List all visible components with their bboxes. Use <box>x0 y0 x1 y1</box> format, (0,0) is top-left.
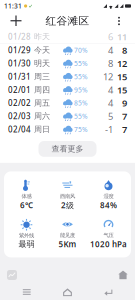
staticText: 55% <box>74 112 88 121</box>
staticText: 周五 <box>34 98 50 108</box>
button[interactable]: Recents <box>13 285 41 299</box>
button[interactable]: 02/02 <box>0 96 135 110</box>
button[interactable]: Statistics <box>1 267 23 283</box>
staticText: 昨天 <box>34 32 50 41</box>
staticText: 5Km <box>58 239 76 249</box>
staticText: 95% <box>74 85 88 94</box>
staticText: 周日 <box>34 124 50 134</box>
staticText: 4 <box>108 84 113 96</box>
staticText: 体感 <box>21 193 31 199</box>
staticText: 01/28 <box>8 31 31 42</box>
staticText: 85% <box>74 99 88 107</box>
staticText: 红谷滩区 <box>45 14 89 27</box>
button[interactable]: 02/04 <box>0 123 135 136</box>
staticText: 75% <box>74 125 88 134</box>
staticText: 15 <box>117 70 127 83</box>
staticText: 84% <box>100 200 117 210</box>
staticText: 7 <box>122 123 127 136</box>
staticText: 9 <box>122 97 127 109</box>
staticText: 02/02 <box>8 98 31 108</box>
staticText: 2级 <box>61 200 74 210</box>
staticText: 01/31 <box>8 71 31 82</box>
staticText: 15 <box>117 84 127 96</box>
button[interactable]: Back <box>94 285 122 299</box>
staticText: 能见度 <box>60 232 75 238</box>
staticText: 4 <box>108 44 113 56</box>
button[interactable]: Home shortcut <box>112 267 134 283</box>
staticText: 今天 <box>34 45 50 55</box>
staticText: 7 <box>122 110 127 122</box>
button[interactable]: Home <box>53 285 81 299</box>
staticText: 01/30 <box>8 58 31 69</box>
staticText: 周三 <box>34 72 50 81</box>
staticText: -1 <box>105 123 113 136</box>
staticText: 11 <box>117 30 127 43</box>
staticText: 70% <box>74 46 88 55</box>
button[interactable]: 01/28 <box>0 30 135 43</box>
button[interactable]: 查看更多 <box>38 141 96 157</box>
staticText: 02/01 <box>8 84 31 95</box>
staticText: 周四 <box>34 85 50 95</box>
staticText: 12 <box>103 70 113 83</box>
button[interactable]: 01/31 <box>0 70 135 83</box>
button[interactable]: 01/29 <box>0 44 135 57</box>
staticText: 02/03 <box>8 111 31 121</box>
staticText: 周六 <box>34 111 50 121</box>
staticText: 气压 <box>103 232 113 238</box>
staticText: 01/29 <box>8 45 31 55</box>
staticText: 6 <box>108 30 113 43</box>
staticText: 02/04 <box>8 124 31 135</box>
staticText: 明天 <box>34 58 50 68</box>
staticText: 紫外线 <box>19 232 34 239</box>
staticText: 55% <box>74 72 88 81</box>
button[interactable]: 01/30 <box>0 57 135 70</box>
staticText: 5 <box>108 110 113 122</box>
button[interactable]: 02/01 <box>0 83 135 96</box>
button[interactable]: Add city <box>4 12 28 30</box>
staticText: 8 <box>122 44 127 56</box>
staticText: 查看更多 <box>51 144 83 154</box>
staticText: 55% <box>74 59 88 68</box>
staticText: 西南风 <box>60 193 75 199</box>
staticText: 1020 hPa <box>90 239 127 249</box>
staticText: 12 <box>117 57 127 70</box>
staticText: 湿度 <box>103 193 113 199</box>
staticText: 6°C <box>20 200 33 210</box>
button[interactable]: 02/03 <box>0 110 135 123</box>
staticText: 11:31 <box>4 2 22 10</box>
staticText: 最弱 <box>18 239 34 249</box>
staticText: 4 <box>108 97 113 109</box>
staticText: 8 <box>108 57 113 70</box>
button[interactable]: More options <box>107 12 131 30</box>
